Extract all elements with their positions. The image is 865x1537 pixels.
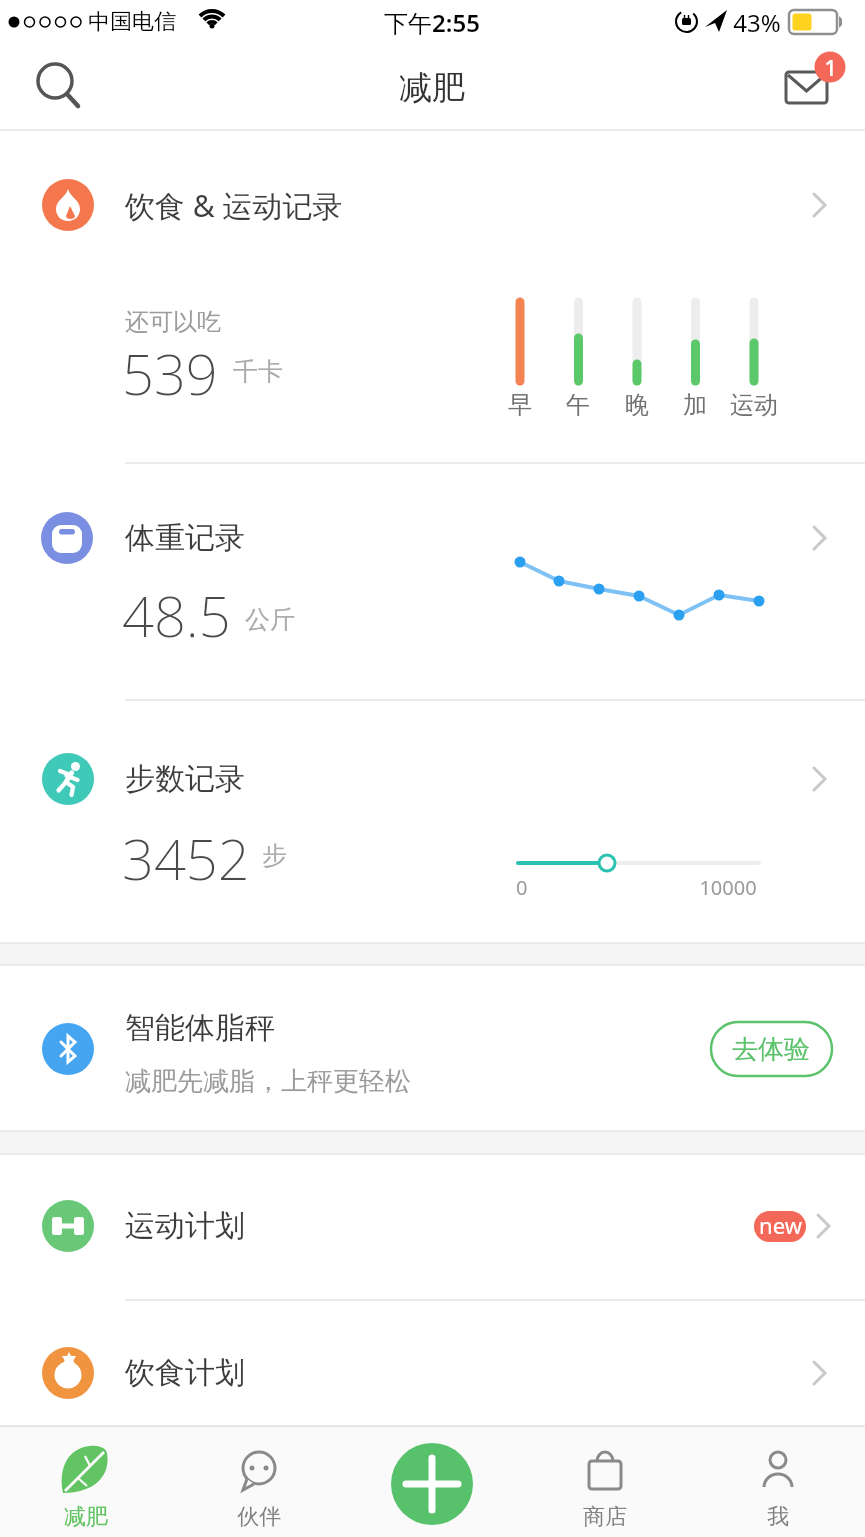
staticText: 43% bbox=[733, 6, 781, 39]
button[interactable] bbox=[16, 1430, 156, 1537]
staticText: 下午2:55 bbox=[384, 6, 480, 39]
staticText: 体重记录 bbox=[125, 519, 245, 557]
staticText: 去体验 bbox=[732, 1033, 810, 1066]
button[interactable] bbox=[0, 131, 865, 463]
button[interactable] bbox=[770, 50, 855, 120]
staticText: 晚 bbox=[625, 390, 649, 420]
button[interactable] bbox=[708, 1430, 848, 1537]
staticText: 减肥 bbox=[64, 1503, 108, 1531]
staticText: 还可以吃 bbox=[125, 307, 221, 337]
staticText: 饮食计划 bbox=[125, 1354, 245, 1392]
staticText: 公斤 bbox=[245, 604, 295, 635]
button[interactable] bbox=[0, 965, 865, 1131]
button[interactable] bbox=[535, 1430, 675, 1537]
staticText: 午 bbox=[566, 390, 590, 420]
staticText: 伙伴 bbox=[237, 1503, 281, 1531]
staticText: 步 bbox=[262, 840, 287, 871]
staticText: new bbox=[759, 1210, 802, 1240]
staticText: 步数记录 bbox=[125, 760, 245, 798]
staticText: 减肥 bbox=[399, 67, 465, 109]
staticText: 539 bbox=[122, 335, 218, 411]
staticText: 0 bbox=[516, 874, 528, 901]
staticText: 运动计划 bbox=[125, 1207, 245, 1245]
button[interactable] bbox=[0, 463, 865, 700]
staticText: 中国电信 bbox=[88, 8, 176, 36]
staticText: 饮食 & 运动记录 bbox=[125, 185, 343, 226]
staticText: 48.5 bbox=[122, 577, 231, 653]
button[interactable] bbox=[25, 50, 95, 120]
staticText: 加 bbox=[683, 390, 707, 420]
button[interactable] bbox=[0, 700, 865, 943]
staticText: 10000 bbox=[699, 874, 757, 901]
staticText: 千卡 bbox=[233, 356, 283, 387]
staticText: 运动 bbox=[730, 390, 778, 420]
button[interactable] bbox=[0, 1154, 865, 1300]
staticText: 3452 bbox=[122, 820, 250, 896]
button[interactable] bbox=[189, 1430, 329, 1537]
staticText: 减肥先减脂，上秤更轻松 bbox=[125, 1065, 411, 1098]
staticText: 我 bbox=[767, 1503, 789, 1531]
button[interactable] bbox=[711, 1022, 832, 1076]
button[interactable] bbox=[0, 1300, 865, 1425]
staticText: 智能体脂秤 bbox=[125, 1009, 275, 1047]
button[interactable] bbox=[389, 1441, 475, 1527]
staticText: 商店 bbox=[583, 1503, 627, 1531]
staticText: 早 bbox=[508, 390, 532, 420]
staticText: 1 bbox=[824, 52, 837, 82]
